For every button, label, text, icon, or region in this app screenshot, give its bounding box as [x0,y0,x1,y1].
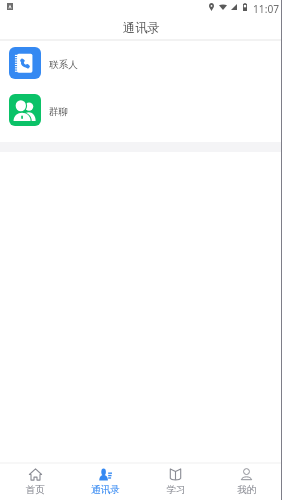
button[interactable]: Study [140,464,211,500]
staticText: 通讯录 [91,484,120,496]
staticText: 首页 [25,484,45,496]
staticText: 群聊 [49,106,69,118]
staticText: 学习 [166,484,186,496]
staticText: 通讯录 [123,20,160,35]
staticText: 11:07 [253,2,280,16]
button[interactable]: 群聊 [0,88,282,135]
other: Home [29,468,42,481]
other: Study [169,468,182,481]
staticText: 我的 [237,484,257,496]
other: Contacts [99,468,112,481]
staticText: 联系人 [49,59,78,71]
button[interactable]: Profile [211,464,282,500]
button[interactable]: Home [0,464,70,500]
button[interactable]: Contacts [70,464,140,500]
button[interactable]: 联系人 [0,41,282,88]
other: Profile [240,468,253,481]
